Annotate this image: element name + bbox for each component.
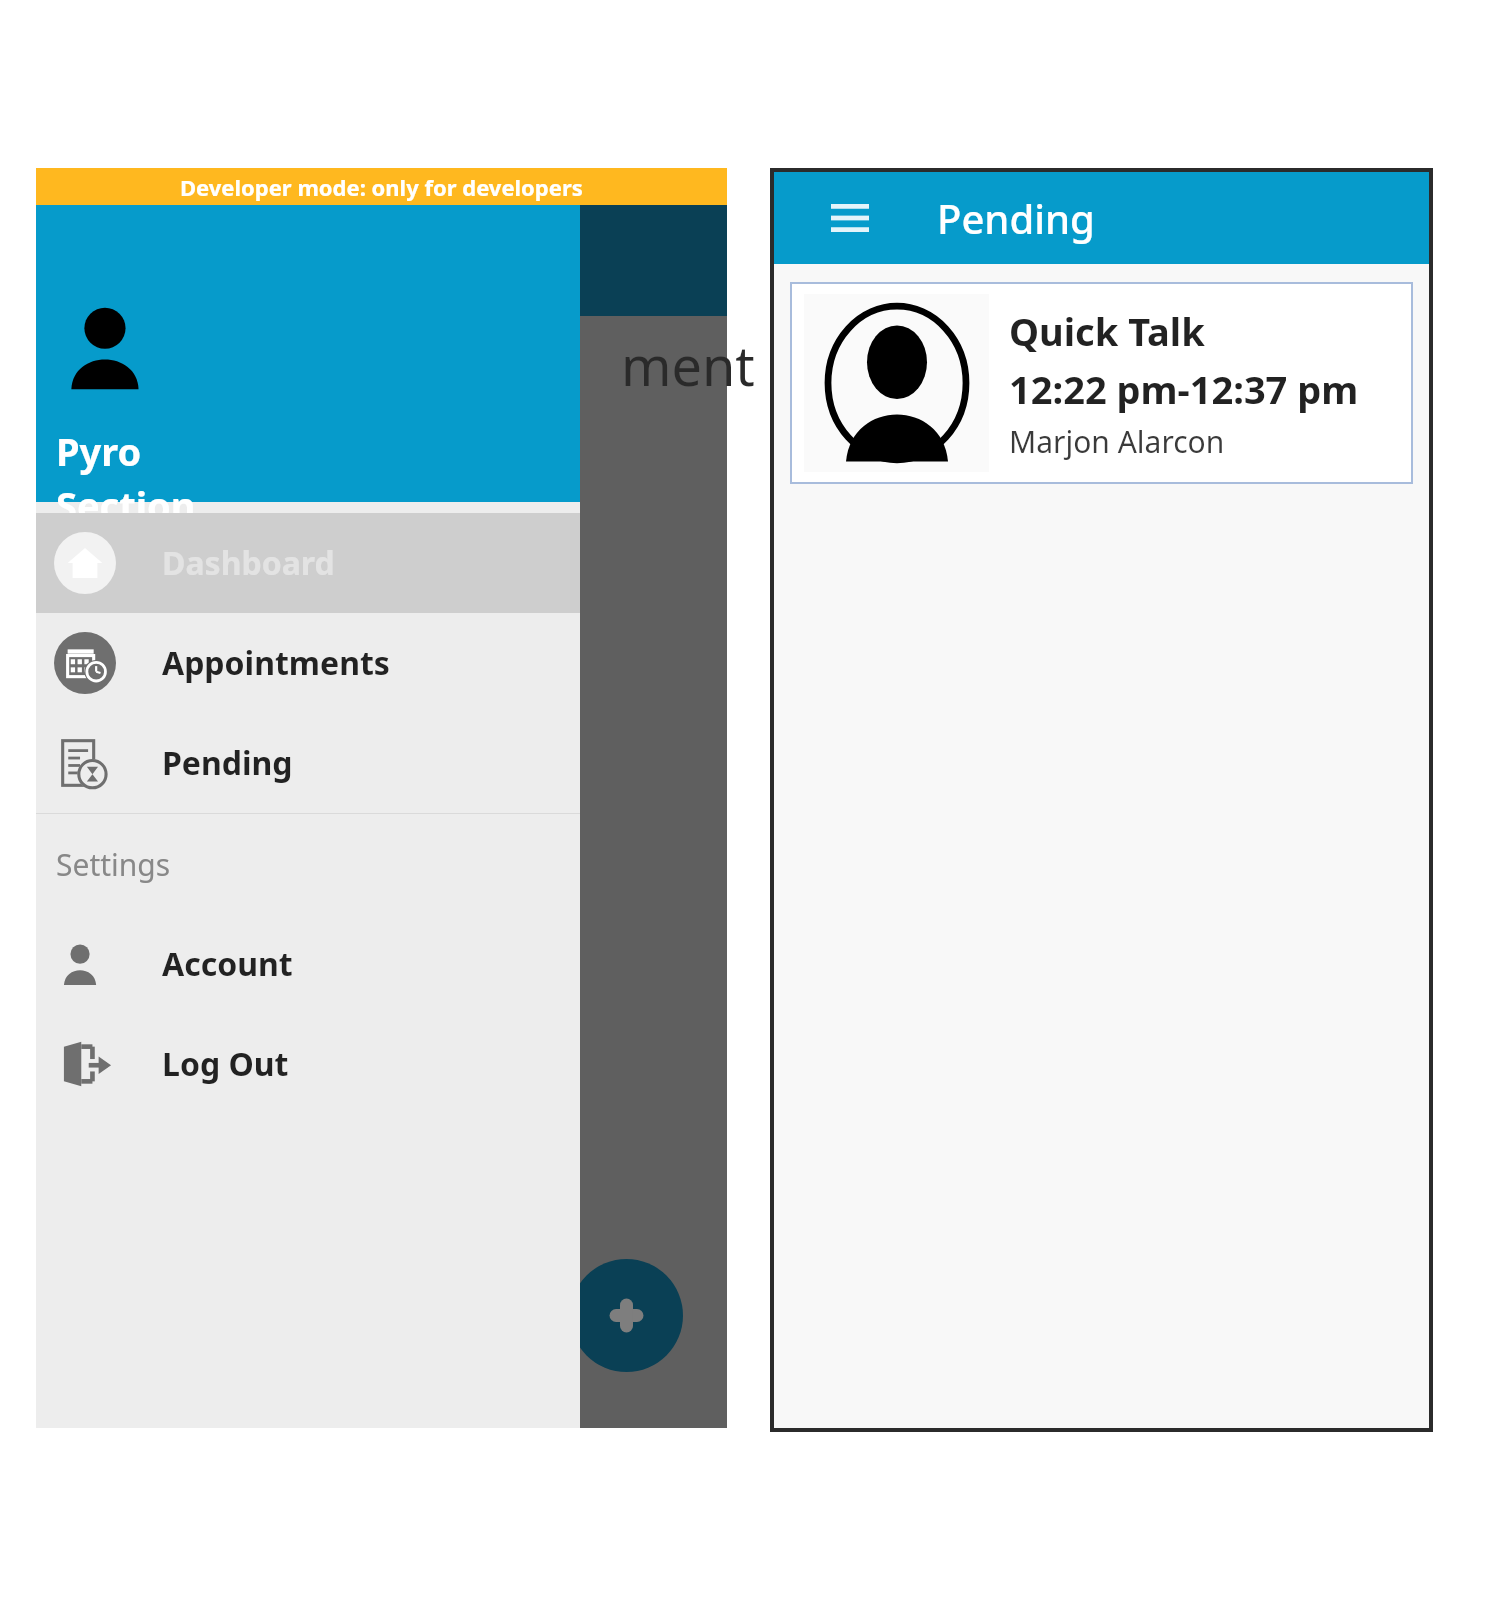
staticText: Section xyxy=(56,479,196,531)
staticText: Pending xyxy=(937,191,1095,245)
staticText: Appointments xyxy=(162,641,390,685)
staticText: 12:22 pm-12:37 pm xyxy=(1009,363,1359,415)
staticText: Marjon Alarcon xyxy=(1009,421,1225,462)
staticText: Pyro xyxy=(56,425,142,477)
staticText: ment xyxy=(621,328,755,402)
staticText: Dashboard xyxy=(162,541,335,585)
button[interactable]: Appointments xyxy=(36,613,580,713)
staticText: Quick Talk xyxy=(1009,305,1205,357)
button[interactable]: Add appointment xyxy=(570,1259,683,1372)
staticText: Account xyxy=(162,942,293,986)
button[interactable]: Log Out xyxy=(36,1014,580,1114)
button[interactable]: Quick Talk xyxy=(792,284,1411,482)
staticText: Log Out xyxy=(162,1042,289,1086)
staticText: Pending xyxy=(162,741,293,785)
staticText: Developer mode: only for developers xyxy=(180,172,583,202)
button[interactable]: Open navigation drawer xyxy=(820,188,880,248)
button[interactable]: Dashboard xyxy=(36,513,580,613)
button[interactable]: Pending xyxy=(36,713,580,813)
button[interactable]: Account xyxy=(36,914,580,1014)
staticText: Settings xyxy=(56,844,171,885)
